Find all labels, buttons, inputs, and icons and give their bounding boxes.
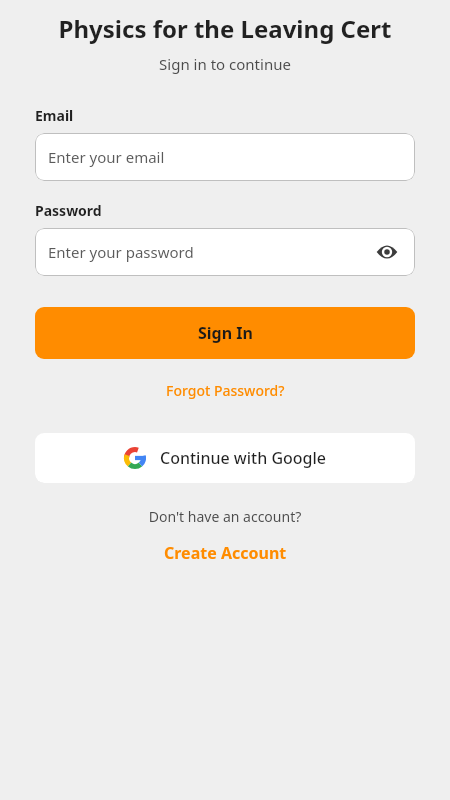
staticText: Enter your password: [48, 242, 194, 262]
button[interactable]: Sign In: [35, 307, 415, 359]
staticText: Don't have an account?: [0, 507, 450, 526]
button[interactable]: Continue with Google: [35, 433, 415, 483]
button[interactable]: Show password: [371, 236, 403, 268]
staticText: Physics for the Leaving Cert: [0, 12, 450, 45]
staticText: Forgot Password?: [166, 381, 285, 400]
staticText: Continue with Google: [160, 447, 326, 469]
staticText: Sign In: [198, 322, 253, 344]
staticText: Enter your email: [48, 147, 165, 167]
button[interactable]: Enter your password: [35, 228, 415, 276]
staticText: Sign in to continue: [0, 54, 450, 74]
button[interactable]: Enter your email: [35, 133, 415, 181]
staticText: Create Account: [164, 542, 287, 564]
staticText: Email: [35, 106, 74, 125]
staticText: Password: [35, 201, 102, 220]
button[interactable]: Create Account: [150, 538, 301, 568]
button[interactable]: Forgot Password?: [154, 376, 297, 405]
